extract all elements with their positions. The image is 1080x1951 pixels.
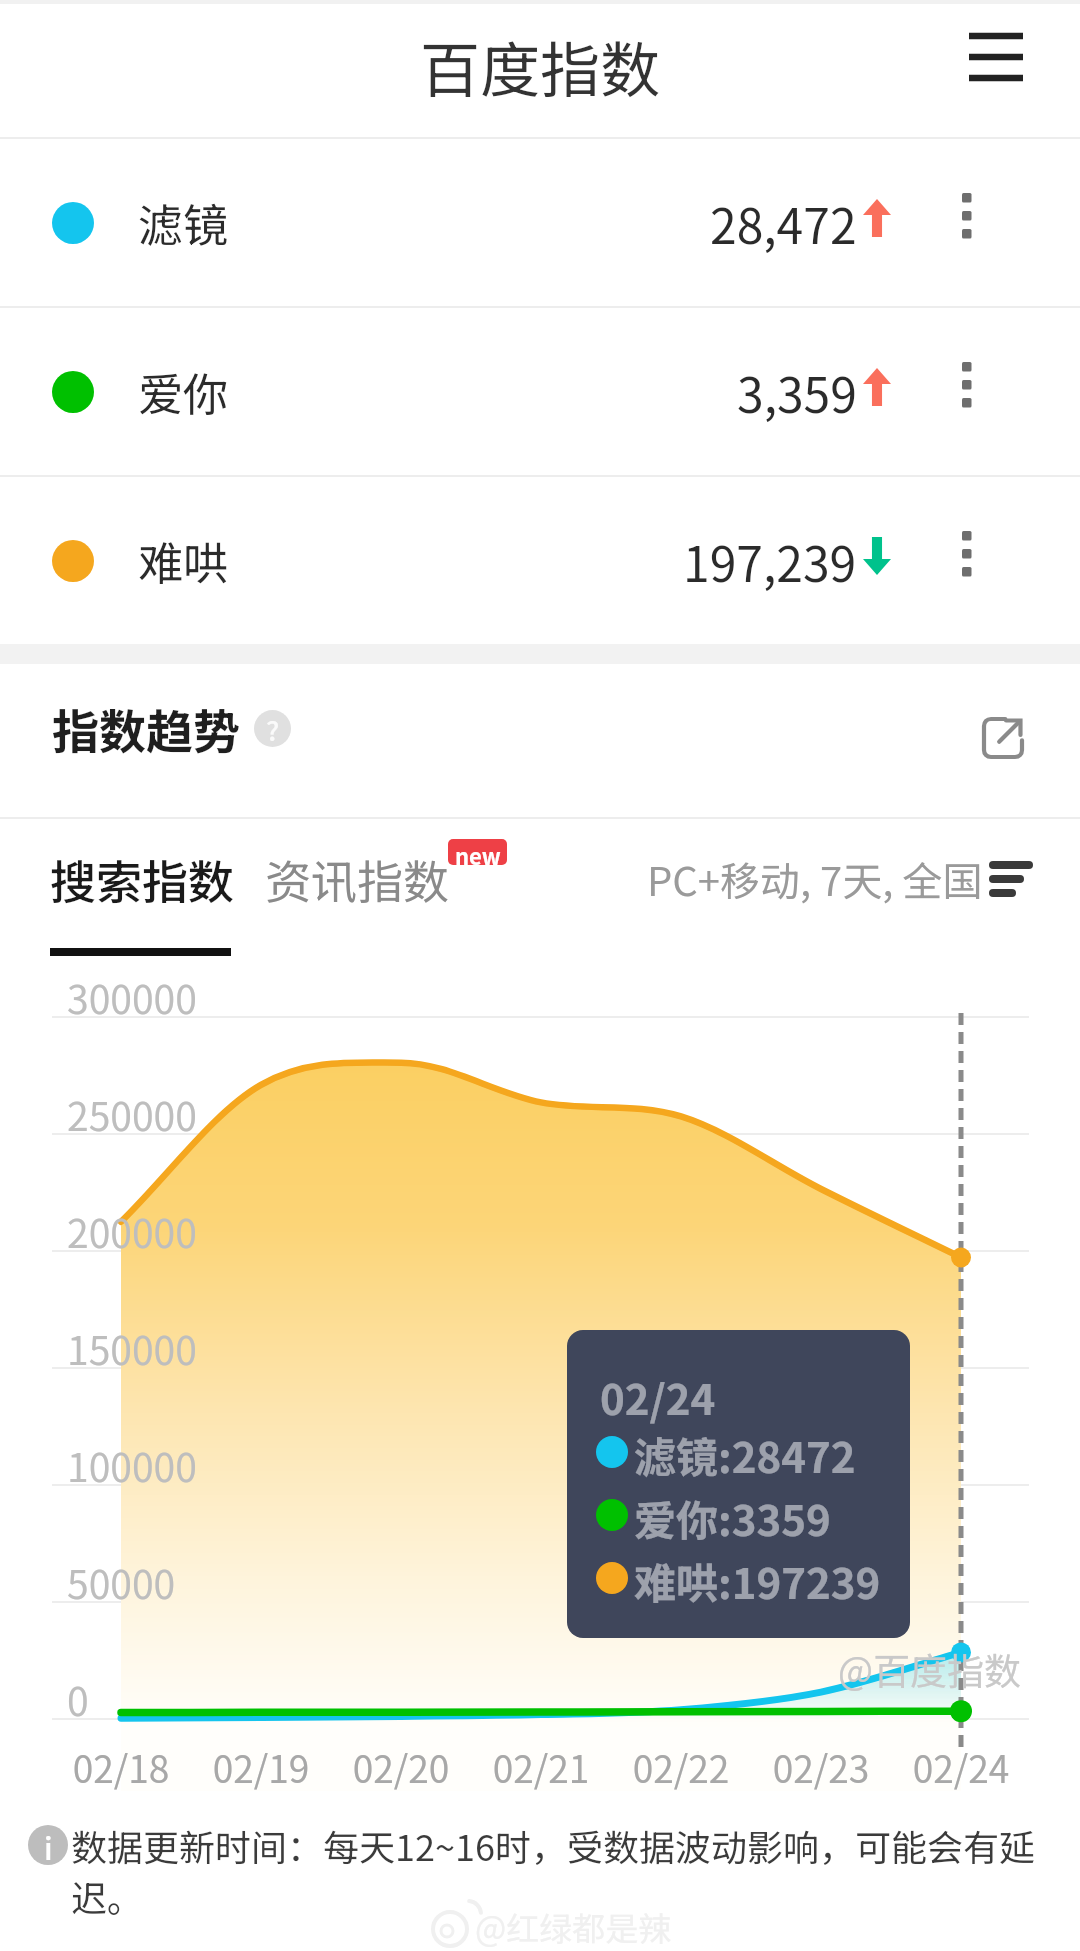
button[interactable]: 资讯指数 bbox=[265, 846, 449, 913]
staticText: i bbox=[44, 1825, 53, 1865]
button[interactable]: 滤镜 bbox=[0, 139, 1080, 306]
staticText: 02/18 bbox=[51, 1740, 191, 1794]
staticText: 爱你:3359 bbox=[634, 1487, 831, 1548]
staticText: 02/20 bbox=[331, 1740, 471, 1794]
staticText: 02/24 bbox=[891, 1740, 1031, 1794]
staticText: 02/22 bbox=[611, 1740, 751, 1794]
staticText: 100000 bbox=[67, 1437, 197, 1493]
staticText: 百度指数 bbox=[420, 22, 660, 109]
button[interactable]: Menu bbox=[944, 12, 1048, 116]
staticText: 197,239 bbox=[683, 526, 857, 596]
staticText: 02/23 bbox=[751, 1740, 891, 1794]
staticText: 难哄 bbox=[138, 528, 229, 593]
staticText: 数据更新时间：每天12~16时，受数据波动影响，可能会有延迟。 bbox=[71, 1819, 1037, 1922]
staticText: 200000 bbox=[67, 1203, 197, 1259]
button[interactable]: Help bbox=[254, 710, 291, 747]
staticText: @百度指数 bbox=[838, 1642, 1022, 1696]
staticText: ? bbox=[266, 710, 280, 747]
staticText: 滤镜 bbox=[138, 190, 229, 255]
button[interactable]: 爱你 bbox=[0, 308, 1080, 475]
staticText: 指数趋势 bbox=[52, 694, 240, 762]
button[interactable]: More options bbox=[939, 195, 995, 251]
button[interactable]: 搜索指数 bbox=[50, 846, 234, 913]
staticText: 滤镜:28472 bbox=[634, 1424, 856, 1485]
staticText: 28,472 bbox=[710, 188, 857, 258]
staticText: PC+移动, 7天, 全国 bbox=[647, 850, 983, 908]
button[interactable]: Open full screen bbox=[959, 693, 1047, 781]
staticText: 资讯指数 bbox=[265, 846, 449, 913]
button[interactable]: More options bbox=[939, 364, 995, 420]
staticText: new bbox=[455, 839, 501, 865]
staticText: 搜索指数 bbox=[50, 846, 234, 913]
staticText: @红绿都是辣 bbox=[475, 1903, 672, 1951]
button[interactable]: More options bbox=[939, 533, 995, 589]
staticText: 02/24 bbox=[600, 1366, 716, 1427]
staticText: 0 bbox=[67, 1671, 89, 1727]
staticText: 3,359 bbox=[737, 357, 857, 427]
button[interactable]: PC+移动, 7天, 全国 bbox=[647, 850, 1080, 908]
staticText: 爱你 bbox=[138, 359, 229, 424]
staticText: 300000 bbox=[67, 969, 197, 1025]
staticText: 难哄:197239 bbox=[634, 1550, 881, 1611]
staticText: 02/19 bbox=[191, 1740, 331, 1794]
staticText: 50000 bbox=[67, 1554, 176, 1610]
staticText: 250000 bbox=[67, 1086, 197, 1142]
staticText: 02/21 bbox=[471, 1740, 611, 1794]
button[interactable]: 难哄 bbox=[0, 477, 1080, 644]
staticText: 150000 bbox=[67, 1320, 197, 1376]
